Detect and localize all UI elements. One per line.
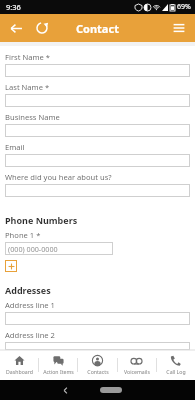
button[interactable]: Refresh	[31, 17, 53, 39]
button[interactable]: Action Items	[42, 355, 75, 375]
staticText: 9:36	[6, 2, 21, 12]
staticText: Contacts	[87, 368, 109, 375]
button[interactable]	[5, 312, 190, 325]
button[interactable]: Back	[5, 17, 27, 39]
staticText: Last Name *	[5, 82, 50, 92]
button[interactable]: Add phone number	[5, 260, 17, 272]
button[interactable]	[5, 154, 190, 167]
staticText: Dashboard	[6, 368, 33, 375]
staticText: Business Name	[5, 112, 60, 122]
staticText: Email	[5, 142, 25, 152]
staticText: Where did you hear about us?	[5, 172, 112, 182]
button[interactable]: Contacts	[81, 355, 114, 375]
button[interactable]	[5, 124, 190, 137]
staticText: Voicemails	[124, 368, 150, 375]
button[interactable]	[5, 94, 190, 107]
button[interactable]: Call Log	[159, 355, 192, 375]
button[interactable]: Menu	[168, 17, 190, 39]
staticText: Address line 2	[5, 330, 55, 340]
staticText: Call Log	[166, 368, 186, 375]
button[interactable]	[5, 342, 190, 350]
button[interactable]	[5, 184, 190, 197]
staticText: Phone 1 *	[5, 230, 41, 240]
button[interactable]: Dashboard	[3, 355, 36, 375]
staticText: Addresses	[5, 284, 51, 296]
staticText: Action Items	[43, 368, 74, 375]
button[interactable]: Back	[58, 383, 72, 397]
button[interactable]: Home	[100, 387, 122, 393]
staticText: Phone Numbers	[5, 214, 78, 226]
button[interactable]	[5, 64, 190, 77]
staticText: Address line 1	[5, 300, 55, 310]
button[interactable]: Voicemails	[120, 355, 153, 375]
staticText: 69%	[177, 2, 191, 12]
staticText: First Name *	[5, 52, 50, 62]
staticText: (000) 000-0000	[8, 244, 58, 254]
staticText: Contact	[76, 21, 119, 36]
button[interactable]: (000) 000-0000	[5, 242, 113, 255]
